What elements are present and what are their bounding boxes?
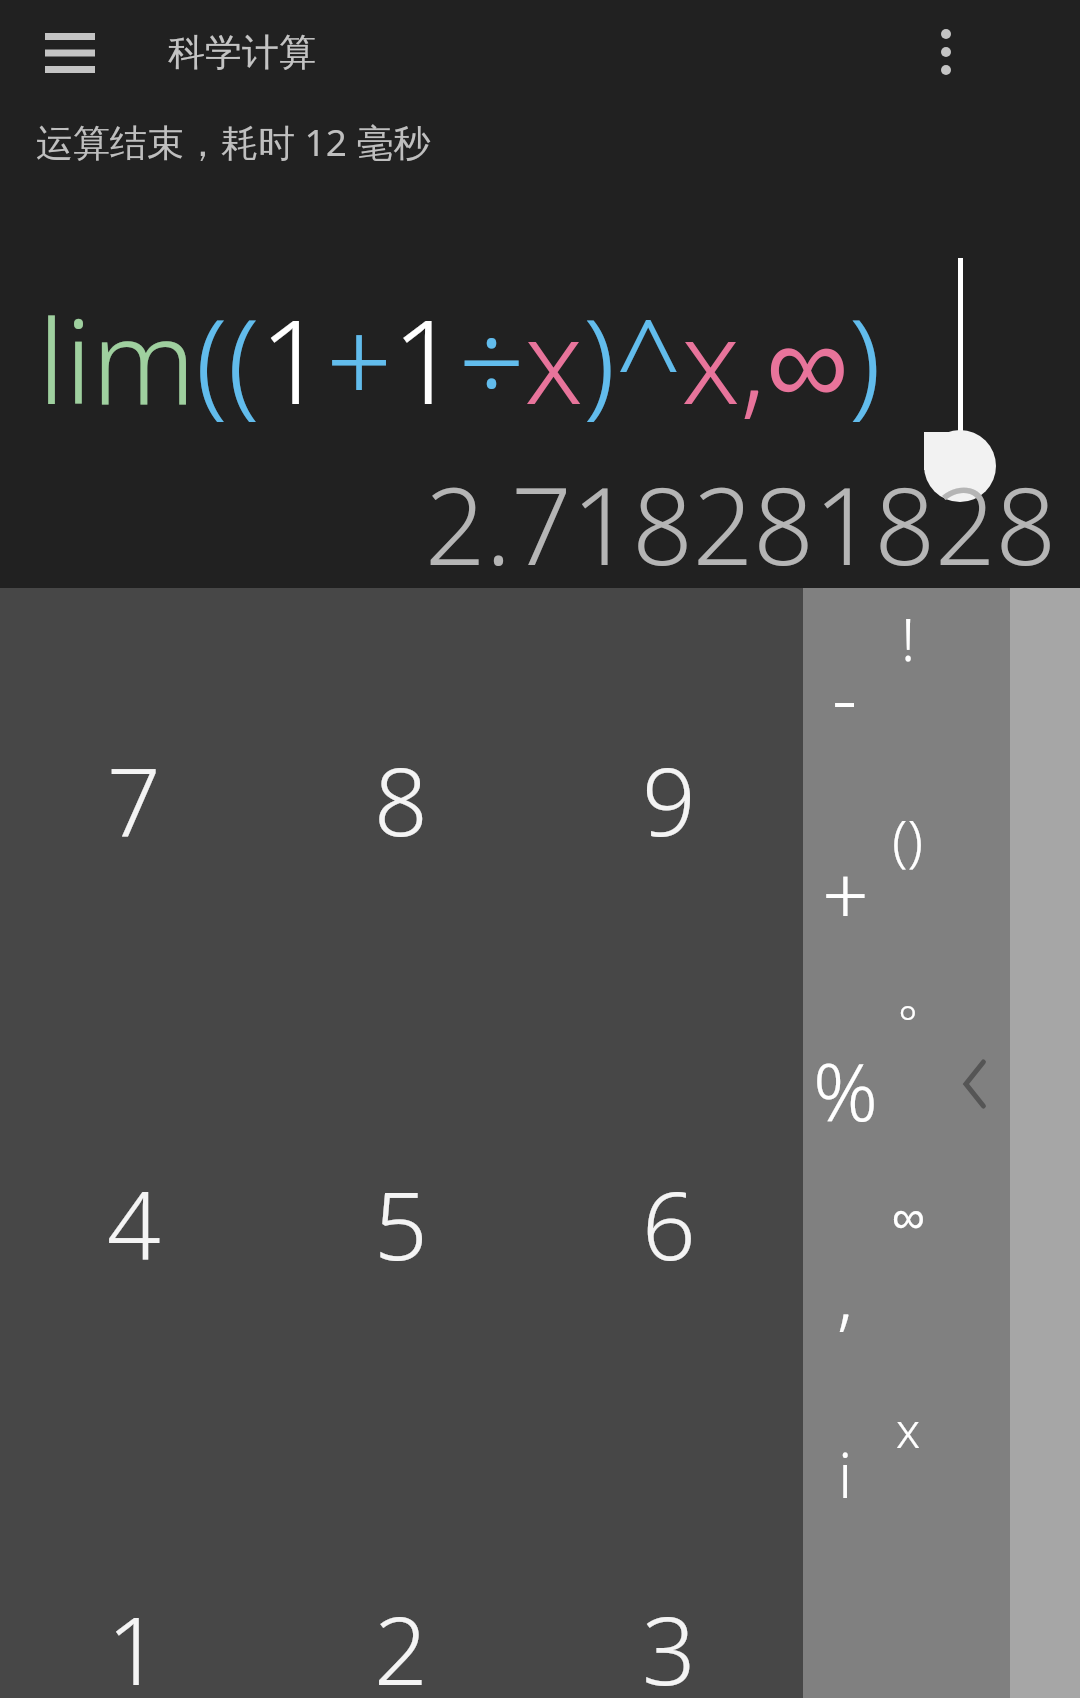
staticText: 1 [107,1585,161,1698]
button[interactable]: + [775,838,915,948]
button[interactable]: 4 [0,1012,267,1436]
button[interactable]: % [775,1034,915,1144]
button[interactable]: () [838,784,978,894]
staticText: 6 [642,1160,696,1288]
button[interactable]: x [838,1374,978,1484]
staticText: % [813,1035,878,1144]
button[interactable]: 科学计算 [168,8,316,96]
staticText: () [892,801,924,877]
staticText: 8 [374,736,428,864]
staticText: 9 [642,736,696,864]
button[interactable]: 1 [0,1436,267,1698]
staticText: 运算结束，耗时 12 毫秒 [36,116,431,167]
button[interactable]: 8 [267,588,535,1012]
button[interactable]: - [775,641,915,751]
staticText: 2 [374,1585,428,1698]
button[interactable]: 2 [267,1436,535,1698]
staticText: , [837,1246,854,1344]
button[interactable]: More options [902,8,990,96]
button[interactable]: Menu [22,12,118,94]
staticText: 2.718281828 [0,452,1056,588]
staticText: - [832,643,858,749]
staticText: 3 [642,1585,696,1698]
button[interactable]: ∞ [838,1161,978,1271]
button[interactable]: ° [838,967,978,1077]
button[interactable]: 9 [535,588,803,1012]
staticText: i [838,1432,853,1516]
staticText: 7 [107,736,161,864]
button[interactable]: i [775,1419,915,1529]
button[interactable]: 7 [0,588,267,1012]
button[interactable]: 5 [267,1012,535,1436]
button[interactable]: , [775,1240,915,1350]
staticText: x [896,1397,921,1462]
button[interactable]: ! [838,583,978,693]
staticText: 4 [107,1160,161,1288]
button[interactable]: 6 [535,1012,803,1436]
staticText: ° [898,991,918,1054]
button[interactable]: Backspace [942,1040,1008,1128]
button[interactable]: 3 [535,1436,803,1698]
staticText: 科学计算 [168,29,316,76]
staticText: lim((1+1÷x)^x,∞) [38,280,881,438]
staticText: ∞ [892,1191,925,1242]
staticText: 5 [374,1160,428,1288]
staticText: + [822,838,869,948]
staticText: ! [901,599,916,678]
